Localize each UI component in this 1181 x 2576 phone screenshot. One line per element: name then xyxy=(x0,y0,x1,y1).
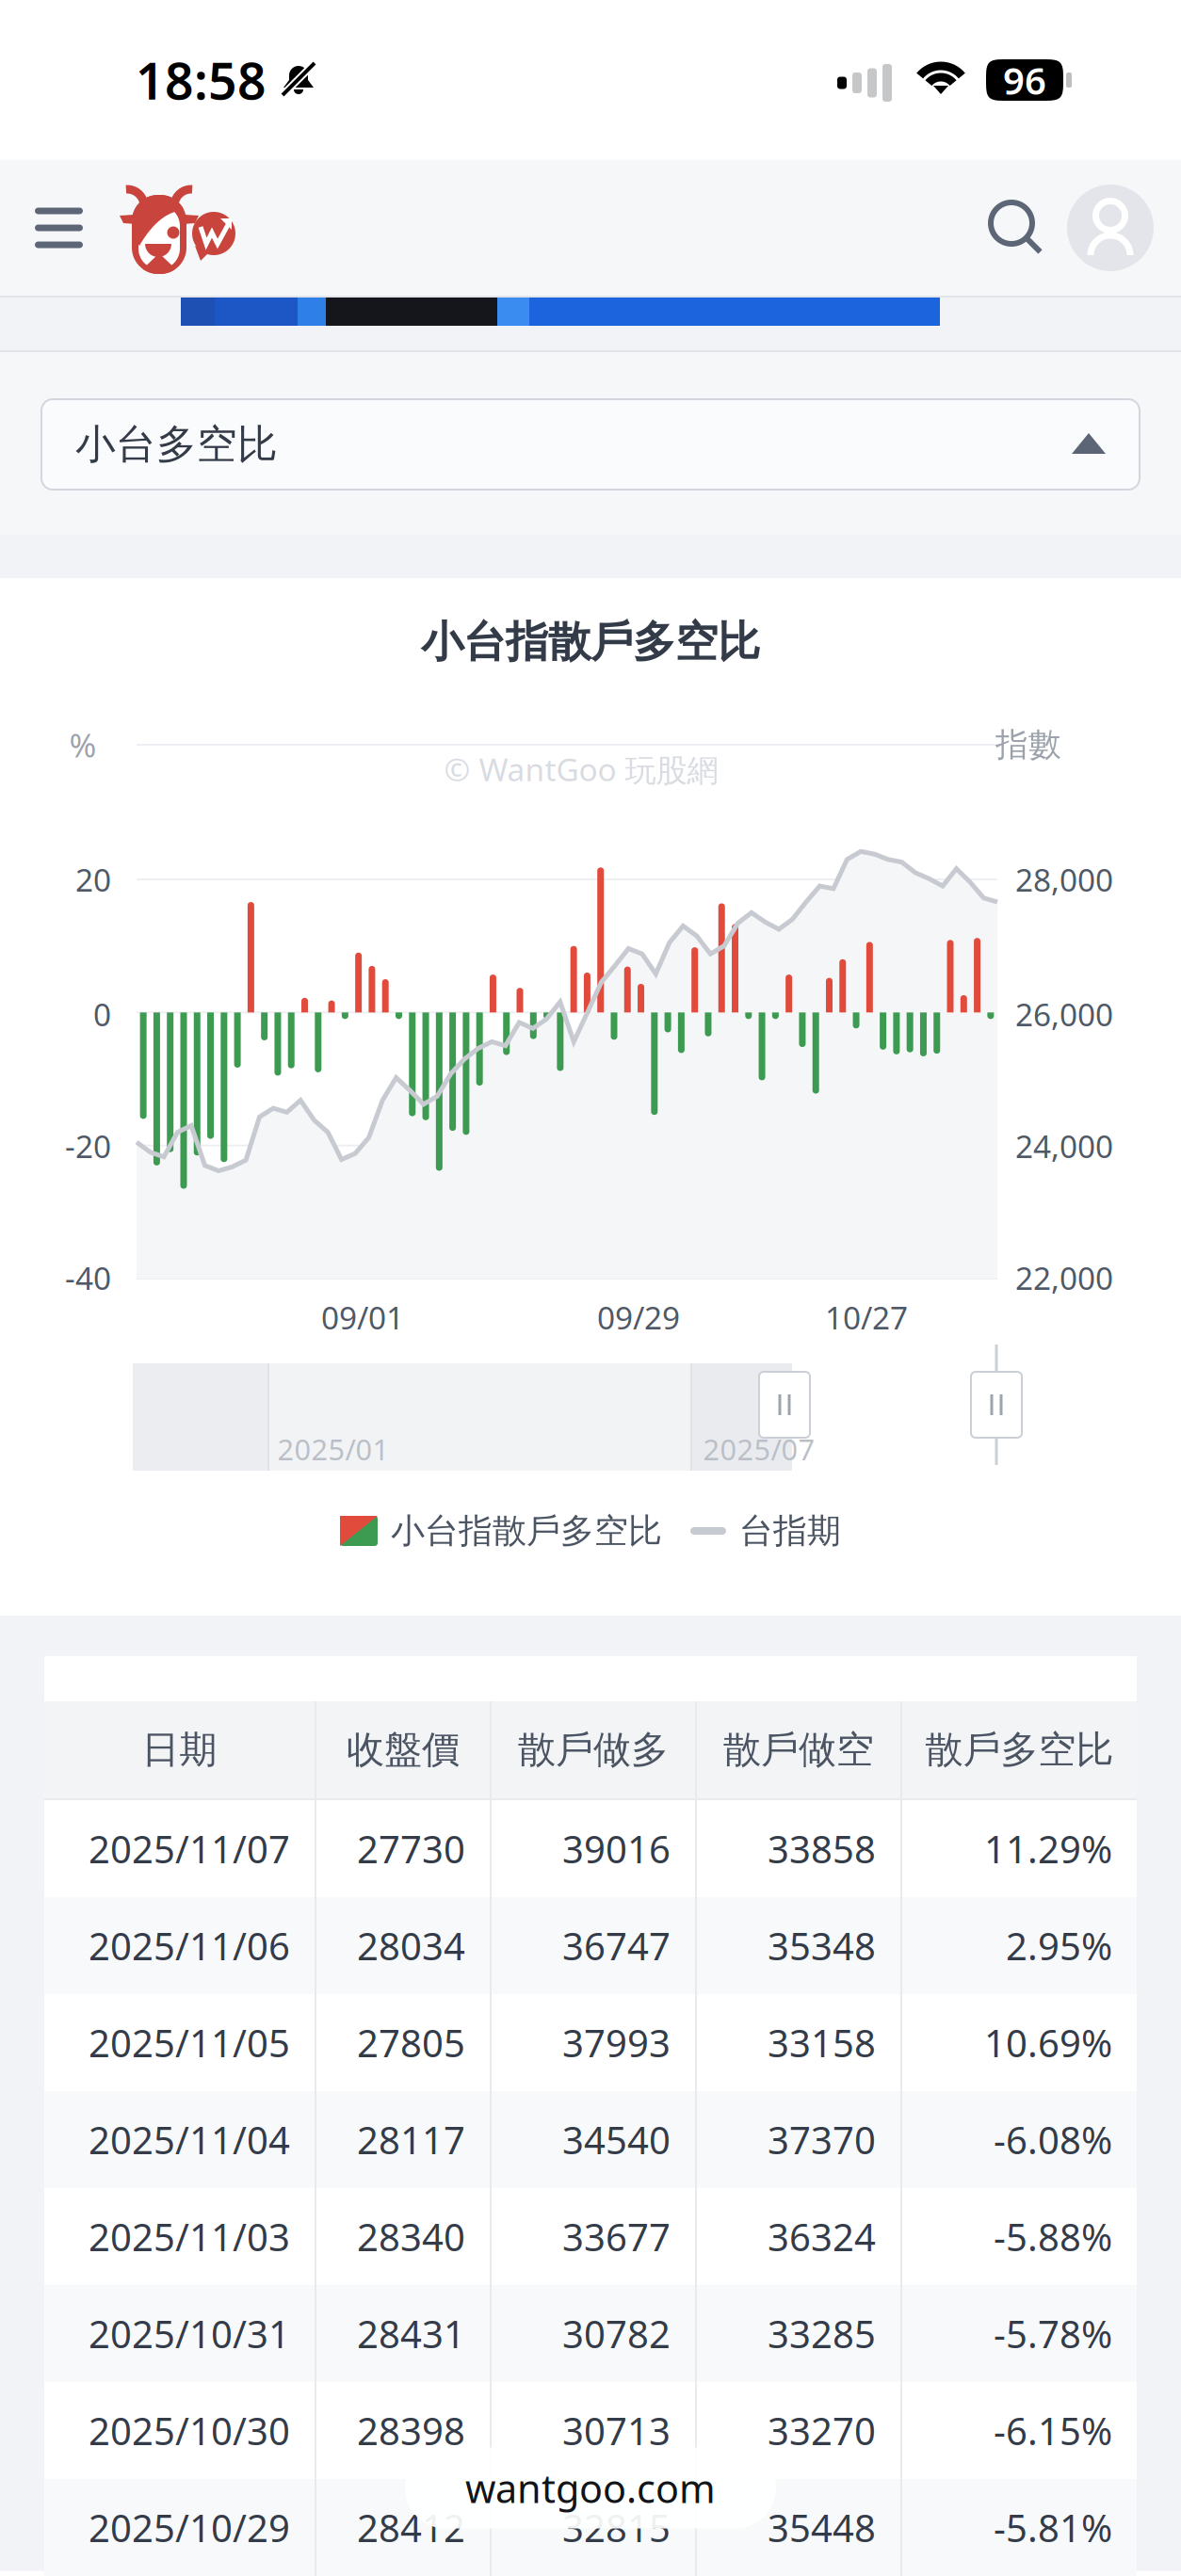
button[interactable]: 小台多空比 xyxy=(41,399,1140,490)
staticText: 2025/11/03 xyxy=(89,2212,290,2262)
staticText: 10/27 xyxy=(825,1296,908,1338)
staticText: 32815 xyxy=(562,2502,671,2552)
staticText: 35348 xyxy=(768,1921,876,1971)
button[interactable]: WantGoo home xyxy=(101,160,242,296)
staticText: 28412 xyxy=(357,2502,465,2552)
staticText: 34540 xyxy=(562,2115,671,2165)
staticText: 散戶做多 xyxy=(518,1727,669,1773)
staticText: 30782 xyxy=(562,2309,671,2359)
staticText: 33270 xyxy=(768,2405,876,2455)
staticText: 27730 xyxy=(357,1824,465,1874)
staticText: 日期 xyxy=(142,1727,217,1773)
staticText: 28398 xyxy=(357,2405,465,2455)
staticText: 33858 xyxy=(768,1824,876,1874)
staticText: 26,000 xyxy=(1015,993,1113,1035)
staticText: 37370 xyxy=(768,2115,876,2165)
staticText: 28034 xyxy=(357,1921,465,1971)
staticText: 22,000 xyxy=(1015,1257,1113,1299)
staticText: 2.95% xyxy=(1006,1921,1112,1971)
staticText: 36324 xyxy=(768,2212,876,2262)
staticText: 指數 xyxy=(995,725,1061,765)
staticText: -6.15% xyxy=(994,2405,1112,2455)
staticText: 2025/11/06 xyxy=(89,1921,290,1971)
staticText: 33158 xyxy=(768,2018,876,2068)
staticText: 2025/07 xyxy=(703,1430,815,1468)
staticText: 2025/11/04 xyxy=(89,2115,290,2165)
staticText: 39016 xyxy=(562,1824,671,1874)
staticText: 28,000 xyxy=(1015,859,1113,900)
staticText: 20 xyxy=(75,859,111,900)
button[interactable]: Menu xyxy=(17,160,101,296)
staticText: © WantGoo 玩股網 xyxy=(444,748,718,790)
staticText: -20 xyxy=(65,1125,111,1167)
staticText: 27805 xyxy=(357,2018,465,2068)
staticText: 2025/11/07 xyxy=(89,1824,290,1874)
staticText: -5.78% xyxy=(994,2309,1112,2359)
staticText: 小台多空比 xyxy=(75,420,278,469)
staticText: 09/01 xyxy=(321,1296,404,1338)
staticText: 收盤價 xyxy=(347,1727,460,1773)
staticText: 28431 xyxy=(357,2309,465,2359)
staticText: 30713 xyxy=(562,2405,671,2455)
staticText: wantgoo.com xyxy=(465,2462,716,2514)
staticText: 台指期 xyxy=(739,1510,841,1552)
staticText: 36747 xyxy=(562,1921,671,1971)
staticText: 2025/10/29 xyxy=(89,2502,290,2552)
staticText: -5.81% xyxy=(994,2502,1112,2552)
button[interactable]: Account xyxy=(1067,160,1154,296)
staticText: 2025/11/05 xyxy=(89,2018,290,2068)
staticText: % xyxy=(69,723,97,766)
staticText: -40 xyxy=(65,1257,111,1299)
staticText: 33677 xyxy=(562,2212,671,2262)
staticText: 10.69% xyxy=(984,2018,1112,2068)
staticText: 09/29 xyxy=(597,1296,680,1338)
staticText: 11.29% xyxy=(984,1824,1112,1874)
staticText: 35448 xyxy=(768,2502,876,2552)
staticText: 小台指散戶多空比 xyxy=(391,1510,662,1552)
staticText: 96 xyxy=(1003,55,1046,105)
staticText: 0 xyxy=(93,993,111,1035)
staticText: 24,000 xyxy=(1015,1125,1113,1167)
staticText: 散戶多空比 xyxy=(925,1727,1114,1773)
staticText: -5.88% xyxy=(994,2212,1112,2262)
staticText: 小台指散戶多空比 xyxy=(421,616,760,668)
staticText: 28340 xyxy=(357,2212,465,2262)
staticText: 37993 xyxy=(562,2018,671,2068)
staticText: 18:58 xyxy=(136,47,267,113)
staticText: 2025/10/31 xyxy=(89,2309,290,2359)
staticText: 33285 xyxy=(768,2309,876,2359)
staticText: 2025/01 xyxy=(277,1430,389,1468)
staticText: -6.08% xyxy=(994,2115,1112,2165)
staticText: 散戶做空 xyxy=(723,1727,874,1773)
button[interactable]: Search xyxy=(977,160,1056,296)
staticText: 28117 xyxy=(357,2115,465,2165)
staticText: 2025/10/30 xyxy=(89,2405,290,2455)
